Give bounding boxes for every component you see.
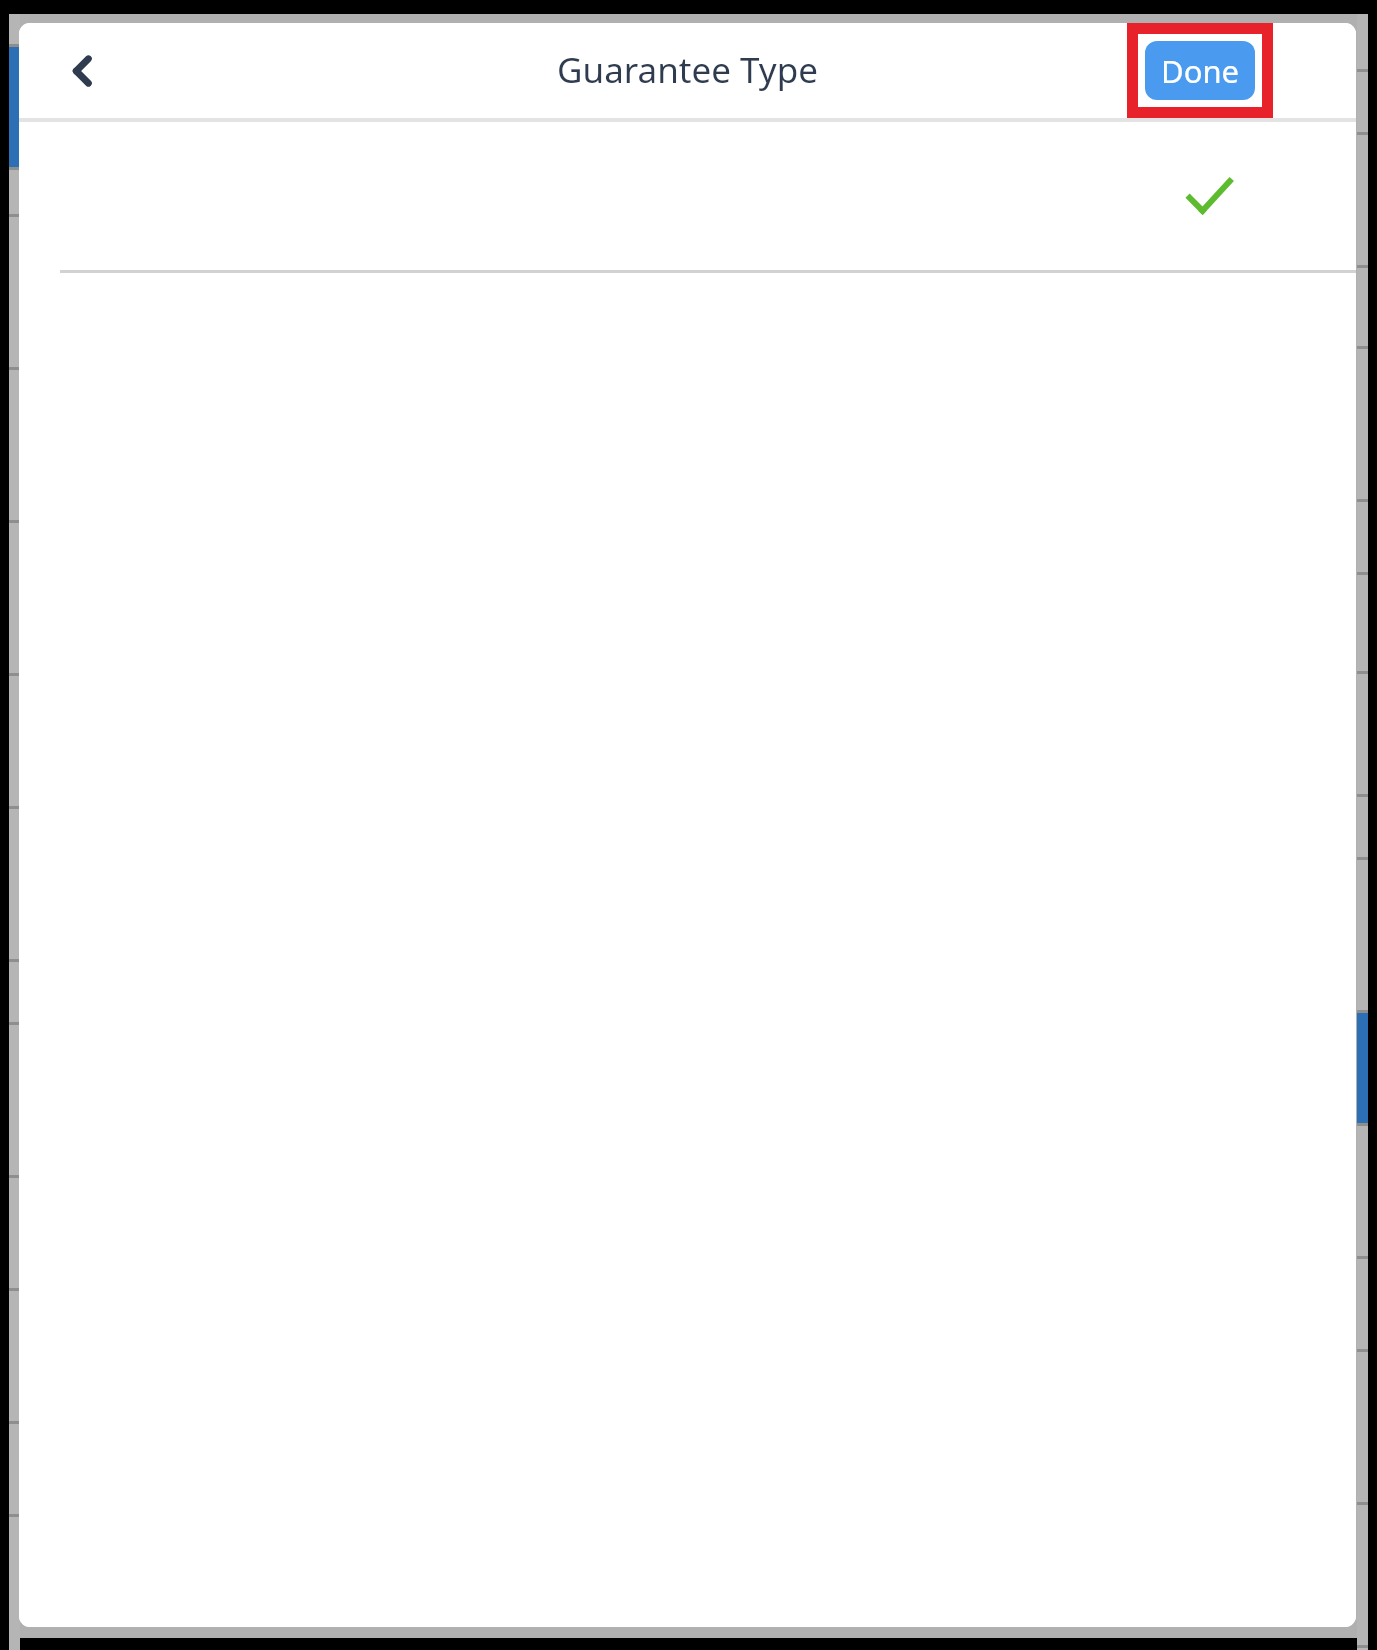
staticText: Done bbox=[1161, 50, 1240, 92]
button[interactable]: Done bbox=[1145, 41, 1255, 100]
staticText: Guarantee Type bbox=[557, 46, 818, 94]
button[interactable]: Back bbox=[47, 35, 119, 107]
other: Selected bbox=[1186, 173, 1232, 219]
button[interactable]: Selected bbox=[19, 122, 1356, 273]
